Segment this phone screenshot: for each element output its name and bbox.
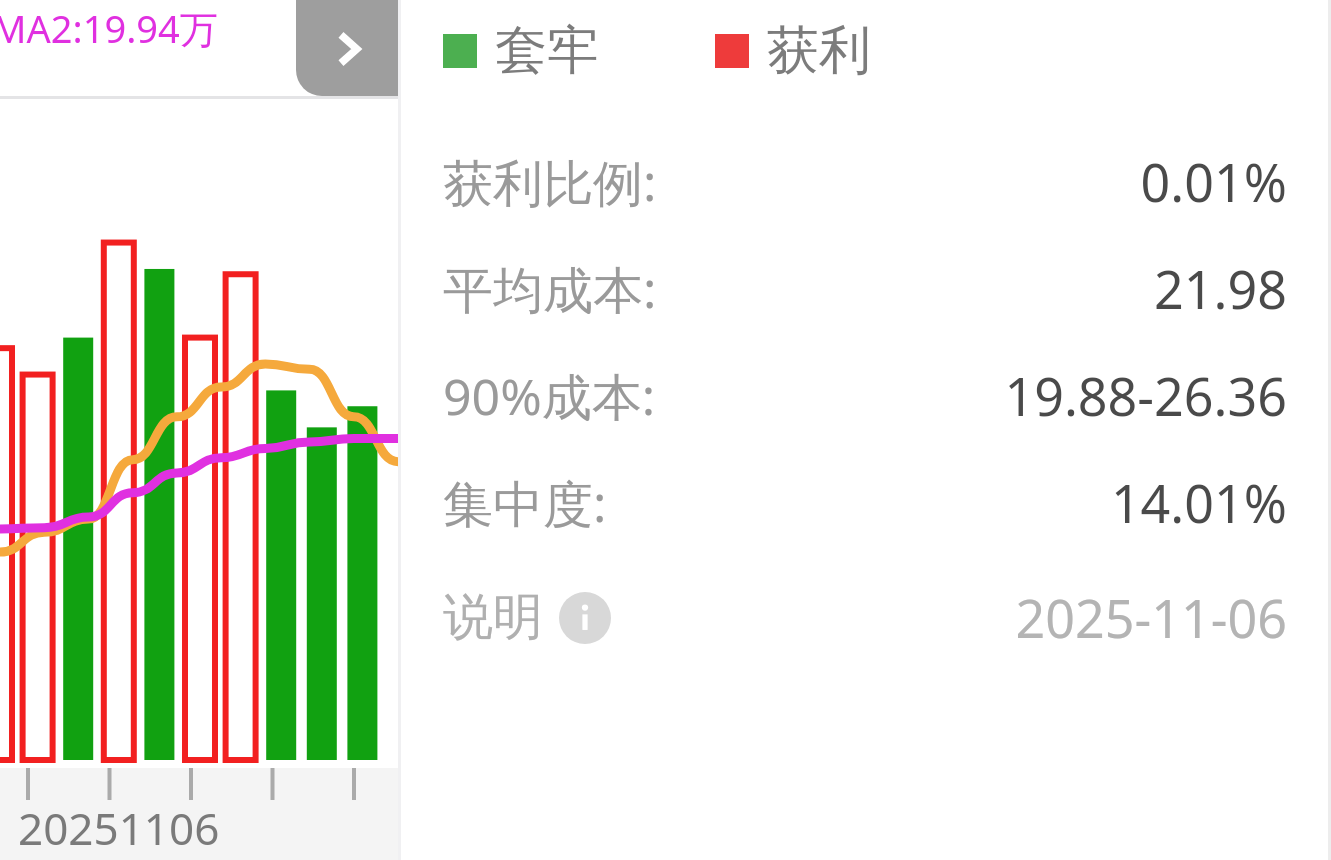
button[interactable]: 套牢 xyxy=(443,18,871,84)
staticText: 0.01% xyxy=(657,146,1287,217)
staticText: 获利 xyxy=(767,18,871,84)
staticText: 21.98 xyxy=(657,253,1287,324)
staticText: 90%成本: xyxy=(443,362,656,430)
staticText: 20251106 xyxy=(18,798,220,858)
staticText: 14.01% xyxy=(607,467,1287,538)
staticText: 说明 xyxy=(443,586,543,649)
staticText: 2025-11-06 xyxy=(611,582,1287,653)
staticText: MA2:19.94万 xyxy=(0,2,218,54)
staticText: 获利比例: xyxy=(443,148,657,216)
button[interactable]: 展开 xyxy=(296,0,400,96)
staticText: 19.88-26.36 xyxy=(656,360,1287,431)
button[interactable]: 说明 xyxy=(443,586,611,649)
button[interactable]: 获利比例: xyxy=(401,128,1331,235)
staticText: 集中度: xyxy=(443,469,607,537)
other: 说明 xyxy=(559,592,611,644)
button[interactable]: 集中度: xyxy=(401,449,1331,556)
button[interactable]: 90%成本: xyxy=(401,342,1331,449)
staticText: 套牢 xyxy=(495,18,599,84)
button[interactable]: 平均成本: xyxy=(401,235,1331,342)
staticText: 平均成本: xyxy=(443,255,657,323)
